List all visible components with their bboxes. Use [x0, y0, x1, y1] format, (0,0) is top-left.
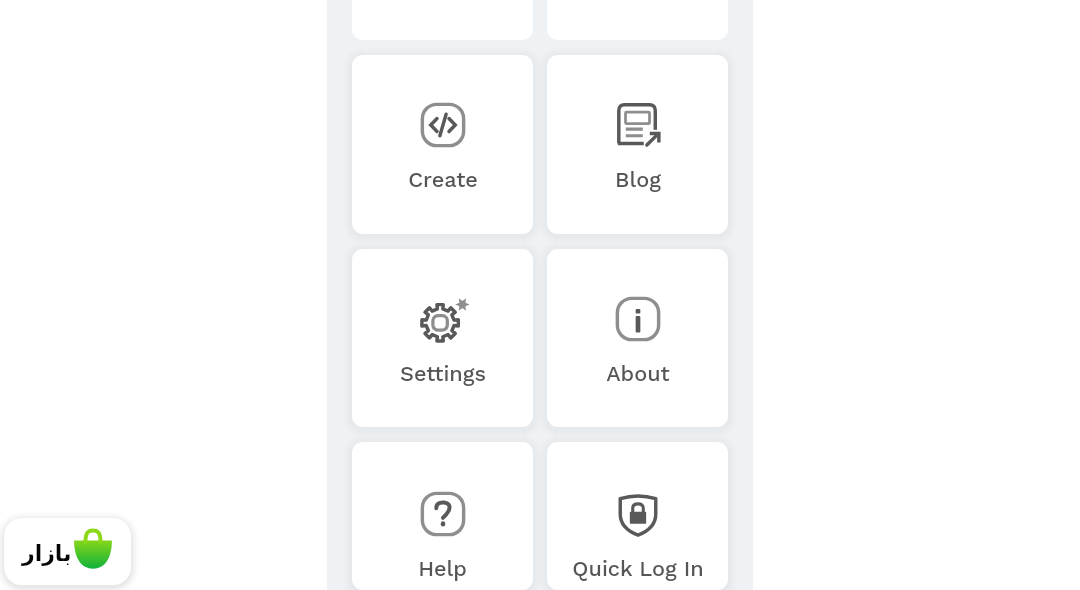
button[interactable]: Quick Log In [547, 442, 728, 590]
staticText: بازار [22, 541, 72, 567]
button[interactable]: Blog [547, 55, 728, 234]
staticText: Create [408, 167, 478, 192]
button[interactable]: Settings [352, 249, 533, 427]
button[interactable]: Create [352, 55, 533, 234]
staticText: Quick Log In [572, 556, 704, 581]
staticText: Blog [615, 167, 661, 192]
button[interactable]: Help [352, 442, 533, 590]
button[interactable]: About [547, 249, 728, 427]
button[interactable]: Bazaar [4, 518, 131, 585]
staticText: Help [418, 556, 467, 581]
staticText: About [606, 361, 670, 386]
staticText: Settings [400, 361, 486, 386]
